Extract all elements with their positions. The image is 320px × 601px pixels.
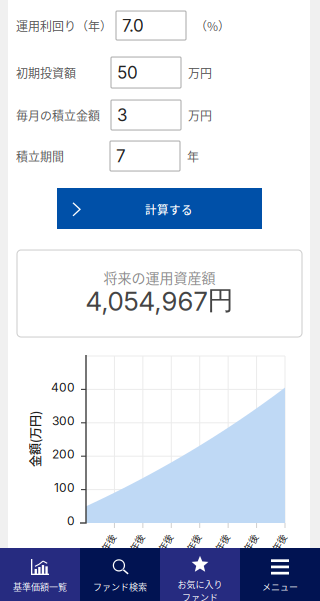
staticText: （%） — [195, 17, 230, 34]
button[interactable]: 基準価額一覧 — [0, 548, 80, 601]
staticText: 1年後 — [96, 538, 119, 551]
staticText: 50 — [117, 62, 138, 83]
staticText: 年 — [187, 147, 199, 165]
staticText: 将来の運用資産額 — [103, 267, 215, 287]
staticText: ファンド検索 — [93, 580, 147, 593]
staticText: 積立期間 — [16, 147, 64, 165]
button[interactable]: お気に入りファンド — [160, 548, 240, 601]
staticText: 400 — [51, 380, 75, 395]
staticText: 200 — [52, 447, 75, 461]
staticText: 金額(万円) — [7, 430, 63, 448]
button[interactable]: ファンド検索 — [80, 548, 160, 601]
staticText: 0 — [67, 514, 75, 528]
button[interactable]: 3 — [111, 100, 181, 130]
staticText: 4,054,967円 — [85, 284, 233, 317]
button[interactable]: メニュー — [240, 548, 320, 601]
staticText: 6年後 — [238, 538, 261, 551]
staticText: 300 — [52, 413, 75, 428]
staticText: 運用利回り（年） — [16, 17, 112, 34]
staticText: 5年後 — [210, 538, 233, 551]
staticText: メニュー — [262, 580, 298, 593]
staticText: 7.0 — [122, 15, 144, 36]
staticText: 万円 — [188, 64, 212, 81]
staticText: 3年後 — [153, 538, 176, 551]
button[interactable]: 7.0 — [116, 11, 186, 40]
staticText: お気に入り — [177, 577, 222, 590]
staticText: 万円 — [188, 106, 212, 124]
staticText: 4年後 — [181, 538, 204, 551]
staticText: 毎月の積立金額 — [16, 106, 100, 124]
button[interactable]: 7 — [110, 141, 180, 171]
staticText: 3 — [117, 105, 128, 125]
staticText: 7 — [116, 146, 126, 166]
staticText: 基準価額一覧 — [13, 580, 67, 593]
button[interactable]: 計算する — [57, 188, 262, 229]
staticText: ファンド — [182, 590, 218, 601]
button[interactable]: 50 — [111, 57, 181, 88]
staticText: 計算する — [145, 201, 193, 218]
staticText: 7年後 — [266, 538, 289, 551]
staticText: 初期投資額 — [16, 64, 76, 81]
staticText: 100 — [54, 480, 75, 495]
staticText: 2年後 — [124, 538, 147, 551]
